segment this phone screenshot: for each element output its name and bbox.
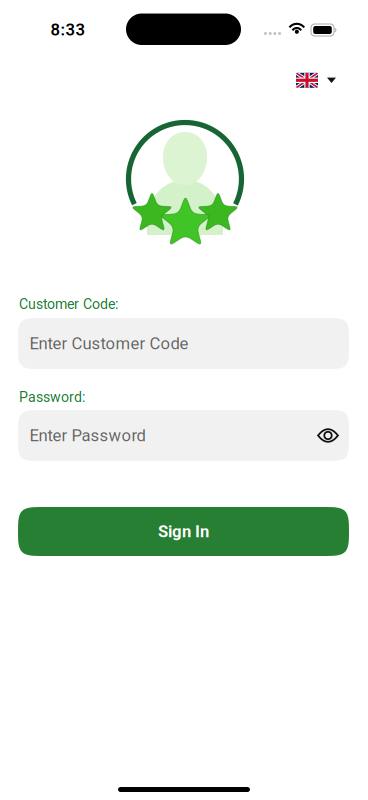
button[interactable]: Sign In bbox=[18, 507, 349, 556]
staticText: Password: bbox=[19, 389, 85, 406]
staticText: Sign In bbox=[158, 522, 209, 541]
staticText: 8:33 bbox=[50, 20, 85, 39]
staticText: Enter Password bbox=[29, 426, 145, 445]
button[interactable]: Show password bbox=[317, 427, 339, 443]
staticText: Customer Code: bbox=[19, 296, 118, 313]
button[interactable]: Select language bbox=[290, 67, 342, 94]
staticText: Enter Customer Code bbox=[29, 334, 188, 353]
